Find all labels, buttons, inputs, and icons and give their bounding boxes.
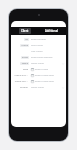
other: Pick date <box>31 74 34 77</box>
other: Pick date <box>31 80 34 83</box>
button[interactable]: Last Name <box>13 49 64 54</box>
staticText: Date <box>22 68 28 71</box>
button[interactable]: ID <box>13 37 64 42</box>
button[interactable]: Office <box>13 61 64 66</box>
button[interactable]: Check-in Ti... <box>13 73 64 78</box>
staticText: First Name <box>31 44 43 47</box>
staticText: Enter email address <box>31 56 53 59</box>
staticText: Check-in Ti... <box>14 74 28 77</box>
button[interactable]: Client <box>11 27 38 35</box>
staticText: ID <box>25 38 28 41</box>
staticText: Last Name <box>31 50 43 53</box>
button[interactable]: Check-out ... <box>13 79 64 84</box>
staticText: Name <box>21 44 28 47</box>
staticText: Office <box>21 62 28 65</box>
staticText: Additional <box>45 29 59 33</box>
staticText: Select value <box>31 86 44 89</box>
staticText: Email <box>22 56 28 59</box>
staticText: Client <box>21 29 29 33</box>
staticText: Enter a date-time <box>35 80 54 83</box>
staticText: Section <box>20 86 28 89</box>
other: Pick date <box>31 68 34 71</box>
button[interactable]: Date <box>13 67 64 72</box>
staticText: Select value <box>31 62 44 65</box>
staticText: Check-out ... <box>14 80 28 83</box>
button[interactable]: Name <box>13 43 64 48</box>
button[interactable]: Section <box>13 85 64 90</box>
staticText: Enter a date <box>35 68 49 71</box>
staticText: Enter number <box>31 38 47 41</box>
button[interactable]: Additional <box>38 27 66 35</box>
staticText: Enter a date-time <box>35 74 54 77</box>
button[interactable]: Email <box>13 55 64 60</box>
